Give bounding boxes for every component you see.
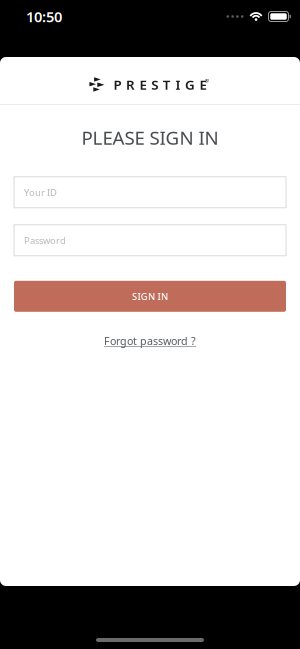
button[interactable]: Your ID <box>14 177 286 208</box>
staticText: ® <box>205 77 209 84</box>
staticText: Password <box>24 234 66 246</box>
button[interactable]: Forgot password ? <box>104 334 196 348</box>
staticText: SIGN IN <box>132 290 168 302</box>
staticText: Forgot password ? <box>104 334 196 348</box>
button[interactable]: Password <box>14 225 286 256</box>
staticText: 10:50 <box>26 7 62 26</box>
staticText: PRESTIGE <box>113 76 207 93</box>
staticText: Your ID <box>24 186 57 198</box>
staticText: PLEASE SIGN IN <box>81 125 218 150</box>
button[interactable]: SIGN IN <box>14 281 286 312</box>
